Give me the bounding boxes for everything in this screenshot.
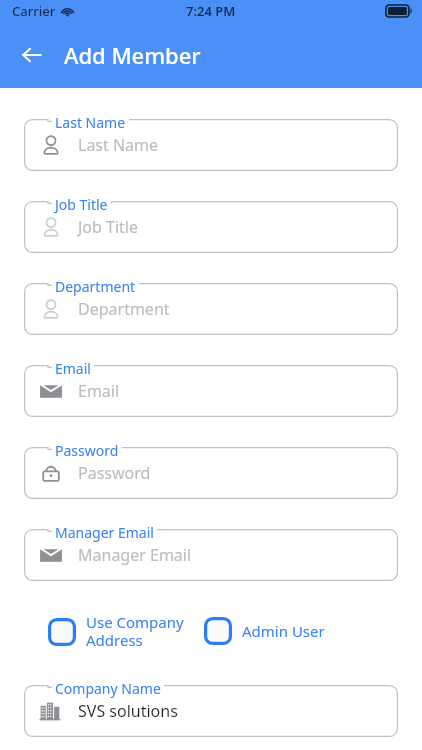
- button[interactable]: Password: [24, 447, 398, 499]
- button[interactable]: Email: [24, 365, 398, 417]
- staticText: Job Title: [78, 216, 139, 238]
- button[interactable]: Manager Email: [24, 529, 398, 581]
- button[interactable]: Back: [8, 31, 56, 79]
- staticText: Password: [78, 462, 151, 484]
- staticText: Email: [78, 380, 120, 402]
- staticText: Carrier: [12, 2, 56, 20]
- staticText: Last Name: [55, 113, 126, 132]
- button[interactable]: SVS solutions: [24, 685, 398, 737]
- button[interactable]: Job Title: [24, 201, 398, 253]
- staticText: 7:24 PM: [186, 2, 236, 20]
- staticText: Email: [55, 359, 91, 378]
- staticText: Manager Email: [78, 544, 192, 566]
- staticText: Manager Email: [55, 523, 154, 542]
- staticText: Use Company Address: [86, 612, 184, 651]
- staticText: Department: [55, 277, 136, 296]
- button[interactable]: Last Name: [24, 119, 398, 171]
- button[interactable]: Use Company Address: [48, 612, 204, 651]
- staticText: Password: [55, 441, 119, 460]
- staticText: Add Member: [64, 40, 201, 70]
- staticText: Admin User: [242, 621, 325, 641]
- staticText: Job Title: [55, 195, 108, 214]
- staticText: Company Name: [55, 679, 161, 698]
- staticText: SVS solutions: [78, 700, 178, 722]
- staticText: Department: [78, 298, 170, 320]
- button[interactable]: Admin User: [204, 617, 398, 645]
- staticText: Last Name: [78, 134, 159, 156]
- button[interactable]: Department: [24, 283, 398, 335]
